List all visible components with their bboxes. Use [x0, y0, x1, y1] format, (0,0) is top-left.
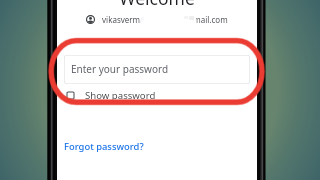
staticText: vikasverma09876543@gmail.com [102, 14, 228, 25]
button[interactable]: Forgot password? [64, 140, 144, 153]
staticText: Show password [85, 89, 156, 101]
button[interactable]: Enter your password [64, 55, 250, 84]
staticText: Welcome [57, 0, 257, 10]
button[interactable]: vikasverma09876543@gmail.com [86, 14, 228, 25]
staticText: Forgot password? [64, 140, 144, 153]
staticText: Enter your password [71, 62, 169, 76]
button[interactable]: Show password [67, 89, 156, 101]
